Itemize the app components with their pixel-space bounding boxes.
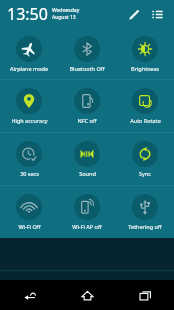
staticText: Sync	[139, 170, 151, 177]
button[interactable]: Bluetooth Off	[58, 28, 116, 79]
staticText: Wi-Fi Off	[18, 223, 41, 230]
button[interactable]: Wi-Fi AP off	[58, 186, 116, 238]
staticText: Auto Rotate	[130, 117, 161, 124]
button[interactable]: Sync	[116, 133, 174, 185]
staticText: Bluetooth Off	[69, 65, 105, 72]
button[interactable]: Back	[0, 280, 58, 310]
staticText: Airplane mode	[10, 65, 48, 72]
button[interactable]: High accuracy	[0, 80, 58, 132]
staticText: Tethering off	[128, 223, 162, 230]
button[interactable]: Settings	[147, 4, 167, 24]
staticText: 13:50	[7, 3, 48, 25]
staticText: Wednesday	[52, 7, 80, 14]
staticText: NFC off	[77, 117, 97, 124]
button[interactable]: Airplane mode	[0, 28, 58, 79]
staticText: 30 secs	[20, 170, 39, 177]
button[interactable]: Tethering off	[116, 186, 174, 238]
button[interactable]: Wi-Fi Off	[0, 186, 58, 238]
staticText: August 13	[52, 14, 76, 21]
staticText: Brightness	[131, 65, 159, 72]
staticText: Wi-Fi AP off	[72, 223, 102, 230]
staticText: High accuracy	[11, 117, 48, 124]
staticText: Sound	[79, 170, 96, 177]
button[interactable]: Auto Rotate	[116, 80, 174, 132]
button[interactable]: NFC off	[58, 80, 116, 132]
button[interactable]: Recent apps	[116, 280, 174, 310]
button[interactable]: Sound	[58, 133, 116, 185]
button[interactable]: Edit	[124, 4, 144, 24]
button[interactable]: 30 secs	[0, 133, 58, 185]
button[interactable]: Brightness	[116, 28, 174, 79]
button[interactable]: Home	[58, 280, 116, 310]
